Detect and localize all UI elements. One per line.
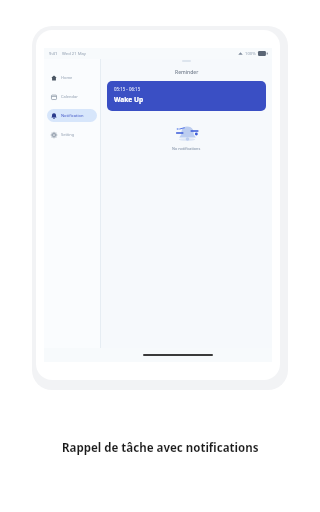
staticText: 05:15 - 06:15 [114, 86, 141, 92]
button[interactable]: Setting [47, 128, 97, 141]
staticText: 9:41 [49, 51, 58, 57]
staticText: No notifications [172, 146, 201, 151]
button[interactable]: Notification [47, 109, 97, 122]
staticText: Wed 21 May [62, 51, 86, 57]
staticText: Setting [61, 132, 75, 137]
button[interactable]: Home [47, 71, 97, 84]
staticText: Home [61, 75, 73, 80]
staticText: Wake Up [114, 95, 144, 104]
staticText: Rappel de tâche avec notifications [62, 440, 259, 456]
staticText: 100% [245, 51, 256, 57]
button[interactable]: Calendar [47, 90, 97, 103]
staticText: Reminder [175, 69, 199, 76]
staticText: Notification [61, 113, 84, 118]
button[interactable]: 05:15 - 06:15 [107, 81, 266, 111]
staticText: Calendar [61, 94, 78, 99]
